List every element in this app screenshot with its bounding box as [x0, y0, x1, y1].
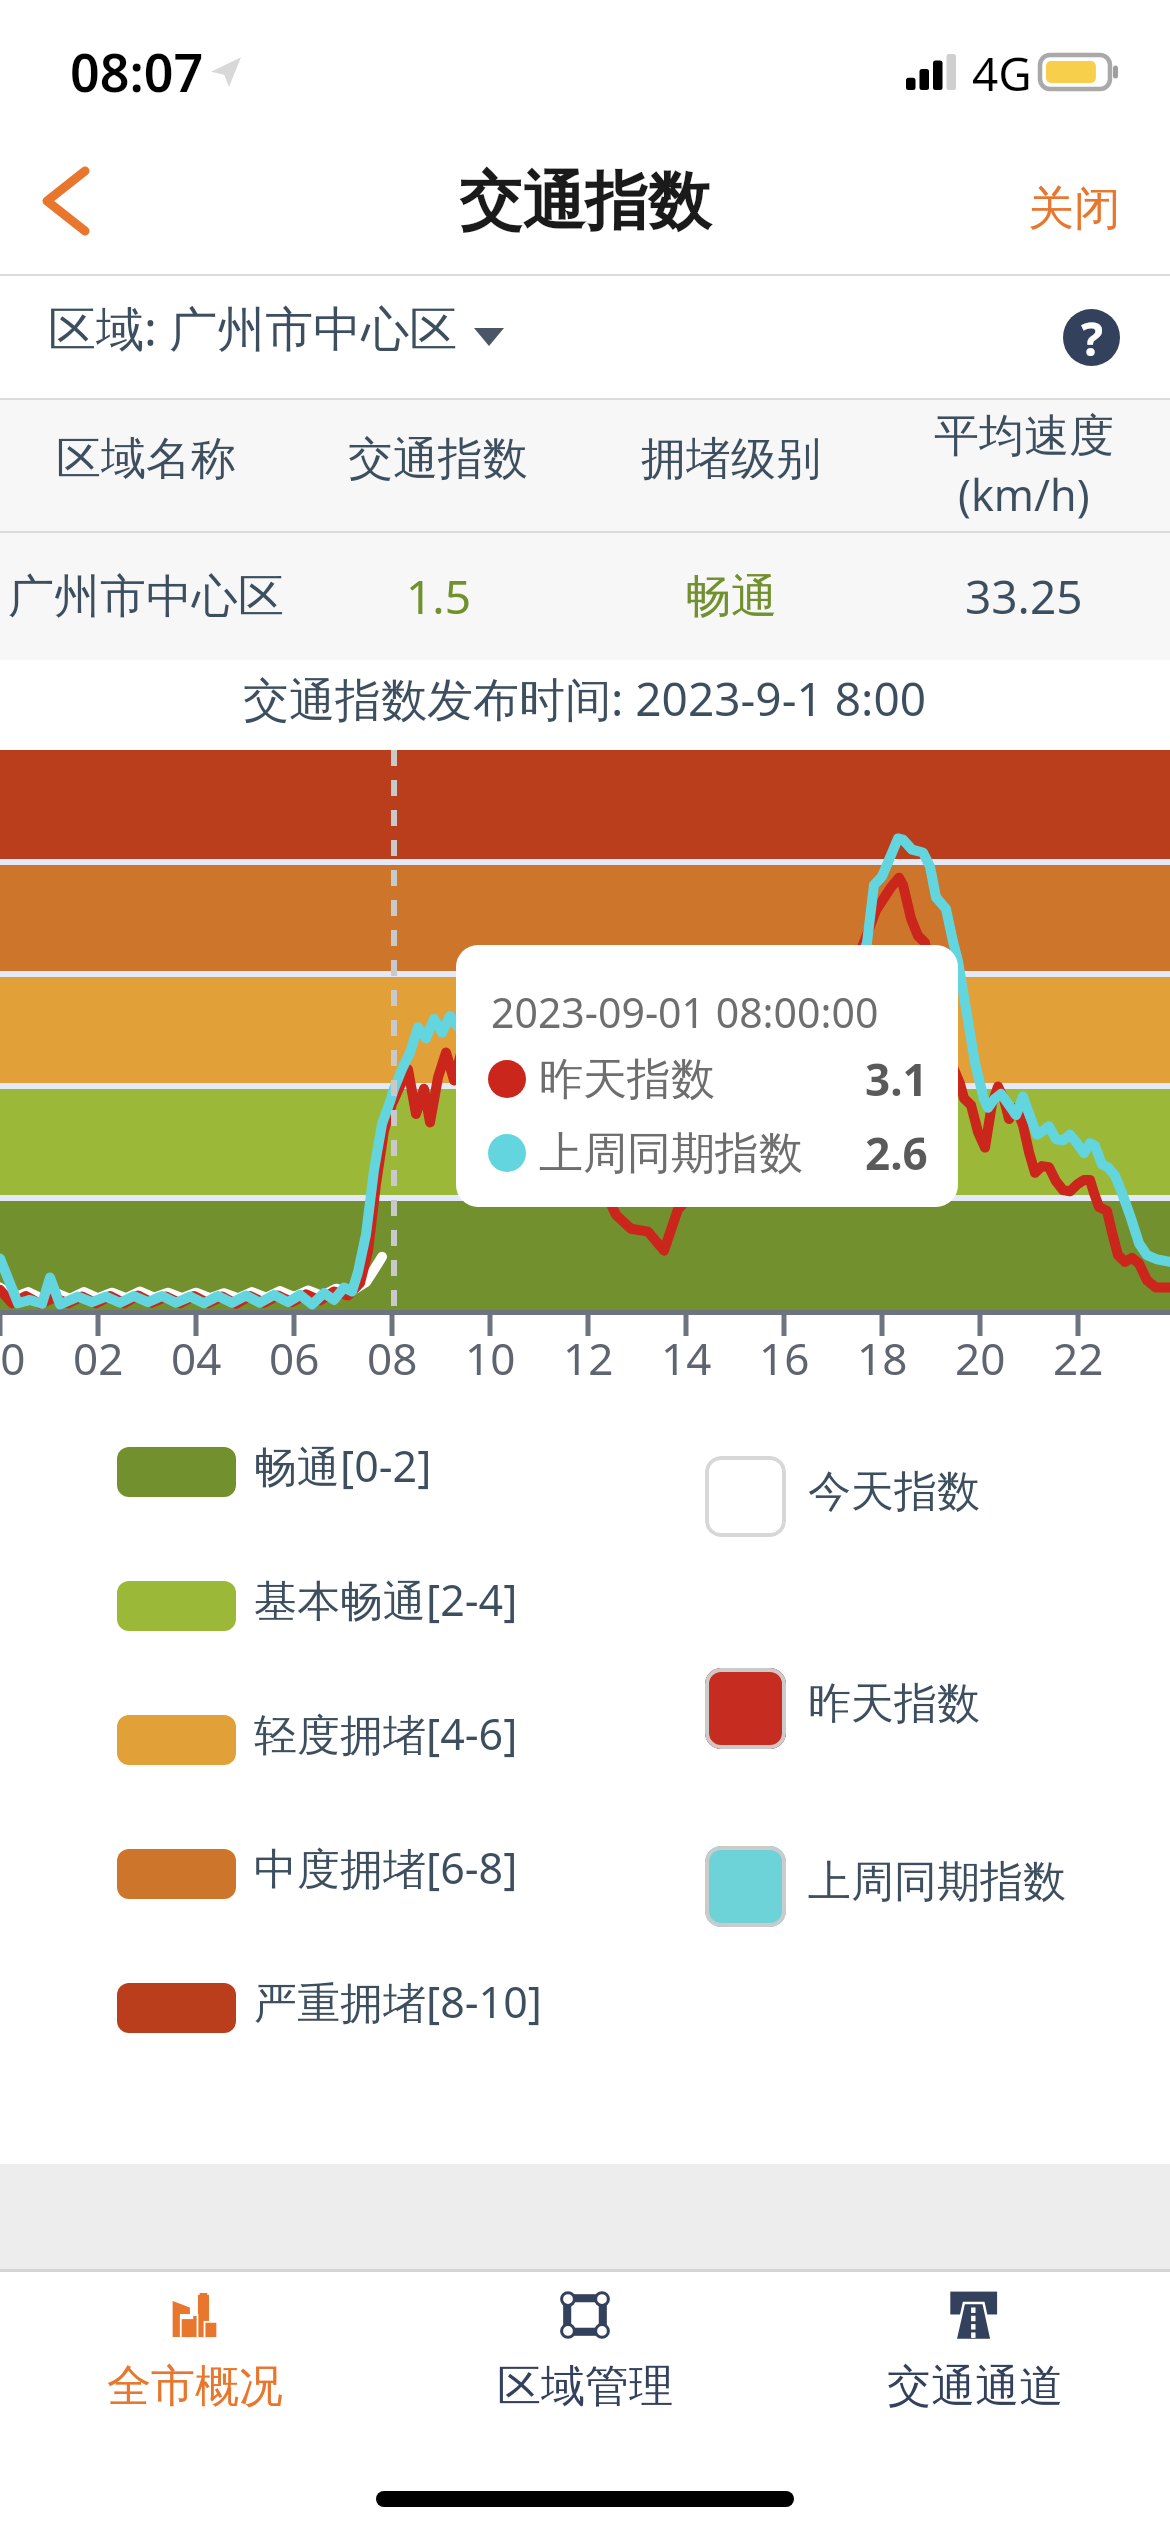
button[interactable]: 交通通道: [780, 2272, 1170, 2440]
staticText: 畅通: [685, 568, 777, 626]
staticText: 10: [465, 1328, 516, 1388]
staticText: 4G: [972, 42, 1032, 105]
staticText: 20: [955, 1328, 1006, 1388]
staticText: 上周同期指数: [539, 1126, 803, 1181]
staticText: 04: [171, 1328, 222, 1388]
staticText: 2023-09-01 08:00:00: [491, 984, 879, 1040]
button[interactable]: Back: [0, 130, 134, 274]
staticText: 平均速度: [934, 408, 1114, 465]
staticText: 06: [269, 1328, 320, 1388]
button[interactable]: 今天指数: [705, 1456, 980, 1537]
staticText: 区域名称: [56, 431, 236, 488]
staticText: 交通指数: [459, 162, 711, 241]
staticText: 12: [563, 1328, 614, 1388]
staticText: 02: [73, 1328, 124, 1388]
staticText: 昨天指数: [808, 1677, 980, 1731]
staticText: 广州市中心区: [8, 568, 284, 626]
staticText: 22: [1053, 1328, 1104, 1388]
staticText: 中度拥堵[6-8]: [254, 1838, 518, 1897]
button[interactable]: Help: [1063, 309, 1120, 366]
staticText: 08: [367, 1328, 418, 1388]
staticText: 严重拥堵[8-10]: [254, 1972, 542, 2031]
staticText: 3.1: [865, 1049, 928, 1109]
button[interactable]: 畅通[0-2]: [117, 1442, 432, 1501]
button[interactable]: 昨天指数: [705, 1668, 980, 1749]
staticText: 区域: 广州市中心区: [48, 295, 458, 361]
staticText: 上周同期指数: [808, 1855, 1066, 1909]
staticText: 区域管理: [497, 2359, 673, 2414]
button[interactable]: 区域: 广州市中心区: [48, 304, 504, 370]
staticText: 交通指数发布时间: 2023-9-1 8:00: [243, 667, 927, 730]
staticText: 14: [661, 1328, 712, 1388]
staticText: 拥堵级别: [641, 431, 821, 488]
staticText: 畅通[0-2]: [254, 1436, 432, 1495]
button[interactable]: 区域管理: [390, 2272, 780, 2440]
staticText: 全市概况: [107, 2359, 283, 2414]
staticText: 今天指数: [808, 1465, 980, 1519]
button[interactable]: 全市概况: [0, 2272, 390, 2440]
button[interactable]: 基本畅通[2-4]: [117, 1576, 518, 1635]
staticText: 16: [759, 1328, 810, 1388]
staticText: 1.5: [406, 565, 471, 628]
staticText: 18: [857, 1328, 908, 1388]
staticText: 2.6: [865, 1123, 928, 1183]
button[interactable]: 轻度拥堵[4-6]: [117, 1710, 518, 1769]
staticText: 轻度拥堵[4-6]: [254, 1704, 518, 1763]
staticText: 08:07: [70, 36, 204, 107]
button[interactable]: 上周同期指数: [705, 1846, 1066, 1927]
staticText: 00: [0, 1328, 26, 1388]
staticText: ?: [1081, 309, 1103, 364]
staticText: 基本畅通[2-4]: [254, 1570, 518, 1629]
staticText: (km/h): [958, 465, 1090, 524]
button[interactable]: 严重拥堵[8-10]: [117, 1978, 542, 2037]
staticText: 交通通道: [887, 2359, 1063, 2414]
button[interactable]: 中度拥堵[6-8]: [117, 1844, 518, 1903]
staticText: 昨天指数: [539, 1052, 715, 1107]
staticText: 关闭: [1028, 180, 1120, 238]
staticText: 33.25: [965, 565, 1083, 628]
button[interactable]: 关闭: [978, 149, 1170, 255]
staticText: 交通指数: [348, 431, 528, 488]
